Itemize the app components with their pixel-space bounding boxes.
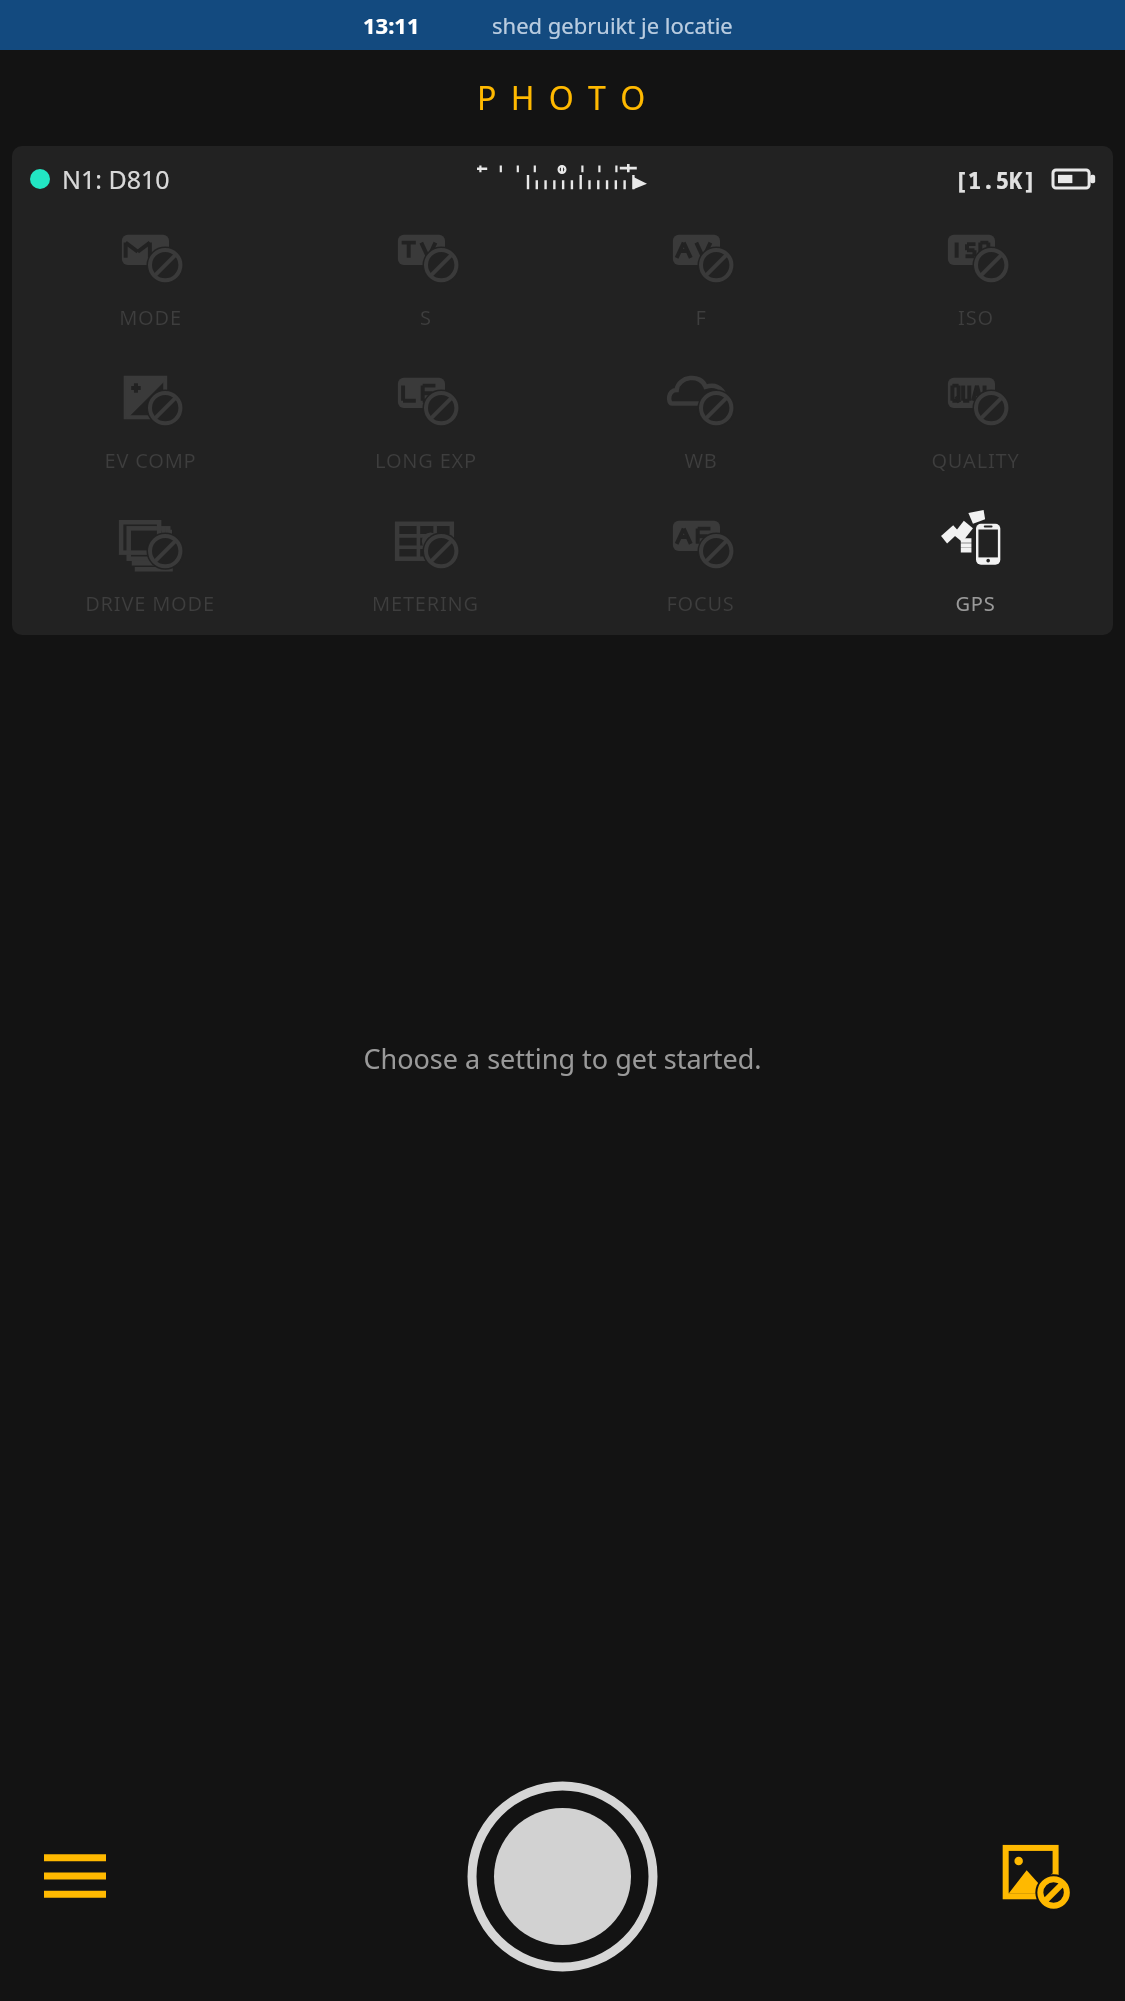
staticText: EV COMP (104, 447, 197, 474)
staticText: DRIVE MODE (85, 590, 215, 617)
staticText: QUALITY (931, 447, 1020, 474)
staticText: ISO (958, 304, 994, 331)
staticText: 13:11 (363, 10, 420, 40)
staticText: MODE (119, 304, 182, 331)
staticText: GPS (955, 590, 996, 617)
staticText: Choose a setting to get started. (363, 1040, 762, 1077)
button[interactable]: LONG EXP (288, 357, 563, 478)
staticText: P H O T O (477, 76, 649, 120)
staticText: LONG EXP (375, 447, 477, 474)
button[interactable]: FOCUS (563, 500, 838, 621)
button[interactable]: ISO (838, 214, 1113, 335)
button[interactable]: Gallery (995, 1831, 1085, 1921)
staticText: METERING (372, 590, 479, 617)
button[interactable]: F (563, 214, 838, 335)
button[interactable]: EV COMP (12, 357, 288, 478)
staticText: F (695, 304, 707, 331)
staticText: WB (684, 447, 718, 474)
button[interactable]: Menu (40, 1841, 110, 1911)
staticText: FOCUS (666, 590, 735, 617)
button[interactable]: QUALITY (838, 357, 1113, 478)
button[interactable]: WB (563, 357, 838, 478)
button[interactable]: S (288, 214, 563, 335)
button[interactable]: GPS (838, 500, 1113, 621)
staticText: S (420, 304, 432, 331)
staticText: N1: D810 (62, 162, 170, 196)
button[interactable]: Shutter (470, 1784, 655, 1969)
button[interactable]: DRIVE MODE (12, 500, 288, 621)
staticText: shed gebruikt je locatie (492, 10, 733, 40)
staticText: [1.5K] (954, 164, 1037, 195)
button[interactable]: METERING (288, 500, 563, 621)
button[interactable]: MODE (12, 214, 288, 335)
